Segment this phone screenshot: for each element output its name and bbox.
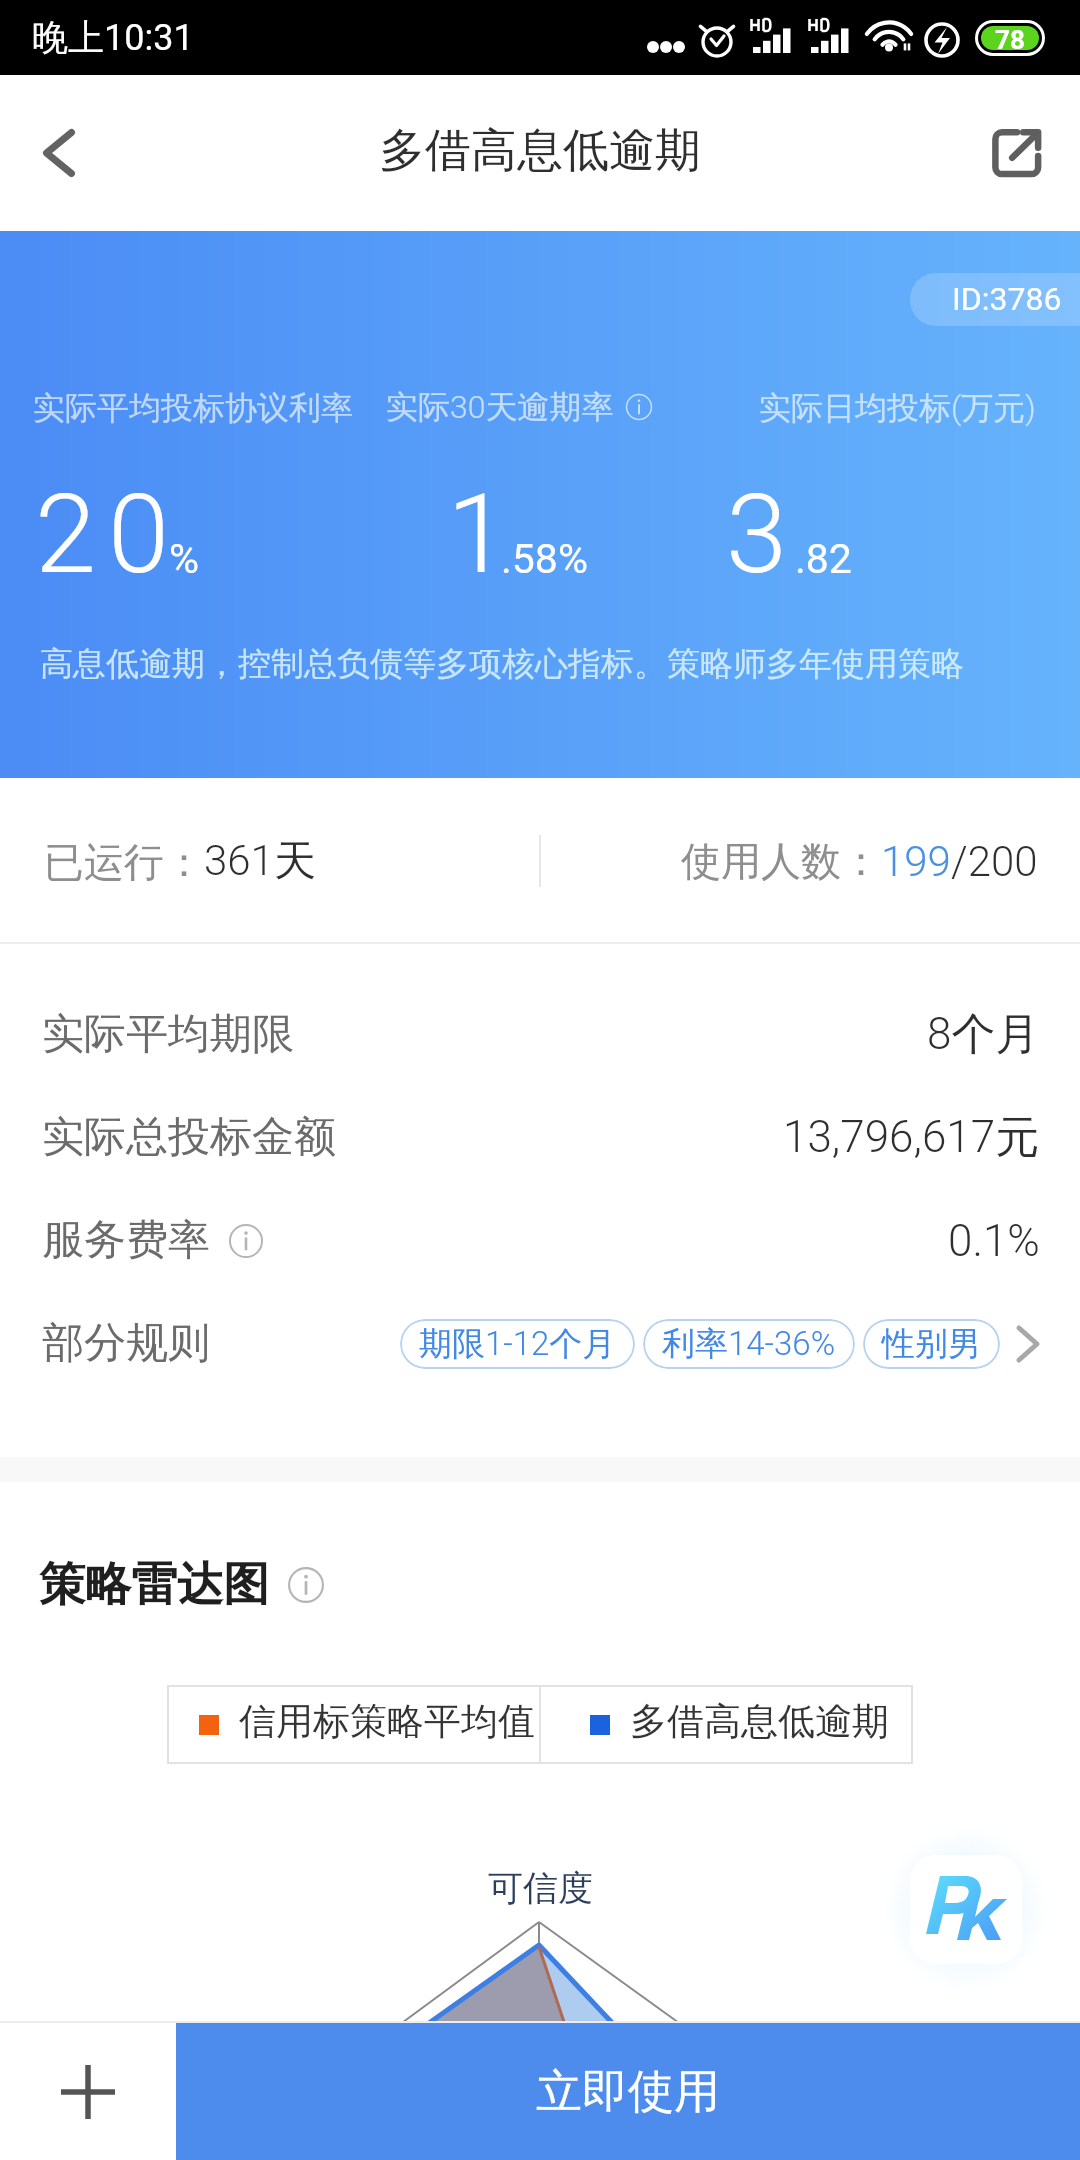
staticText: 0.1% bbox=[948, 1215, 1040, 1267]
staticText: 199 bbox=[881, 837, 951, 886]
staticText: .82 bbox=[795, 535, 852, 583]
staticText: 8个月 bbox=[927, 1007, 1040, 1062]
staticText: /200 bbox=[951, 837, 1038, 886]
staticText: 78 bbox=[995, 26, 1025, 49]
staticText: 实际日均投标(万元) bbox=[759, 388, 1036, 428]
staticText: 已运行： bbox=[44, 837, 204, 887]
staticText: 信用标策略平均值 bbox=[239, 1698, 535, 1745]
staticText: 13,796,617元 bbox=[783, 1110, 1040, 1165]
staticText: 可信度 bbox=[488, 1866, 593, 1910]
button[interactable]: 实际平均期限 bbox=[0, 983, 1080, 1086]
button[interactable]: 实际总投标金额 bbox=[0, 1086, 1080, 1189]
staticText: 实际30天逾期率 bbox=[386, 387, 614, 427]
staticText: 20 bbox=[35, 470, 182, 599]
staticText: 策略雷达图 bbox=[39, 1556, 269, 1614]
staticText: 利率14-36% bbox=[662, 1323, 836, 1365]
staticText: 实际平均投标协议利率 bbox=[33, 388, 353, 428]
staticText: 1 bbox=[447, 470, 521, 599]
button[interactable]: 信用标策略平均值 bbox=[167, 1685, 539, 1764]
button[interactable]: 立即使用 bbox=[176, 2023, 1080, 2160]
staticText: 多借高息低逾期 bbox=[630, 1698, 889, 1745]
staticText: 高息低逾期，控制总负债等多项核心指标。策略师多年使用策略 bbox=[40, 643, 964, 685]
staticText: 实际总投标金额 bbox=[42, 1111, 336, 1164]
button[interactable]: Back bbox=[0, 91, 124, 215]
button[interactable]: Add to list bbox=[0, 2023, 176, 2160]
staticText: 性别男 bbox=[882, 1323, 981, 1365]
staticText: 立即使用 bbox=[536, 2063, 720, 2121]
button[interactable]: Share bbox=[956, 91, 1080, 215]
staticText: 多借高息低逾期 bbox=[379, 122, 701, 180]
button[interactable]: 多借高息低逾期 bbox=[541, 1685, 913, 1764]
button[interactable]: 服务费率 bbox=[0, 1189, 1080, 1292]
staticText: 晚上10:31 bbox=[32, 15, 194, 60]
staticText: .58% bbox=[501, 535, 588, 583]
staticText: 3 bbox=[726, 470, 800, 599]
staticText: % bbox=[169, 535, 200, 583]
staticText: 服务费率 bbox=[42, 1214, 210, 1267]
staticText: 部分规则 bbox=[42, 1317, 210, 1370]
button[interactable]: PK compare bbox=[910, 1855, 1022, 1964]
staticText: 实际平均期限 bbox=[42, 1008, 294, 1061]
staticText: 使用人数： bbox=[681, 836, 881, 886]
staticText: 期限1-12个月 bbox=[419, 1323, 616, 1365]
button[interactable]: 部分规则 bbox=[0, 1292, 1080, 1395]
staticText: ID:3786 bbox=[952, 280, 1062, 318]
staticText: 361天 bbox=[204, 835, 316, 888]
